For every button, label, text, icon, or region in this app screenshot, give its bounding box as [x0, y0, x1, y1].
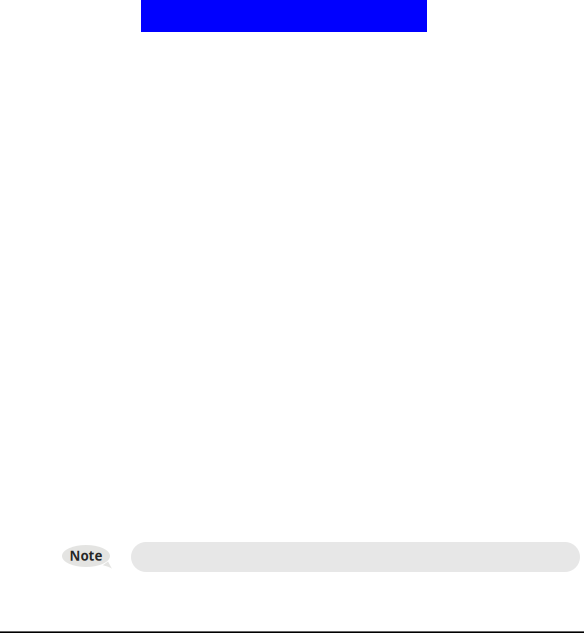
button[interactable]: Note: [0, 542, 584, 572]
staticText: Note: [69, 547, 102, 564]
